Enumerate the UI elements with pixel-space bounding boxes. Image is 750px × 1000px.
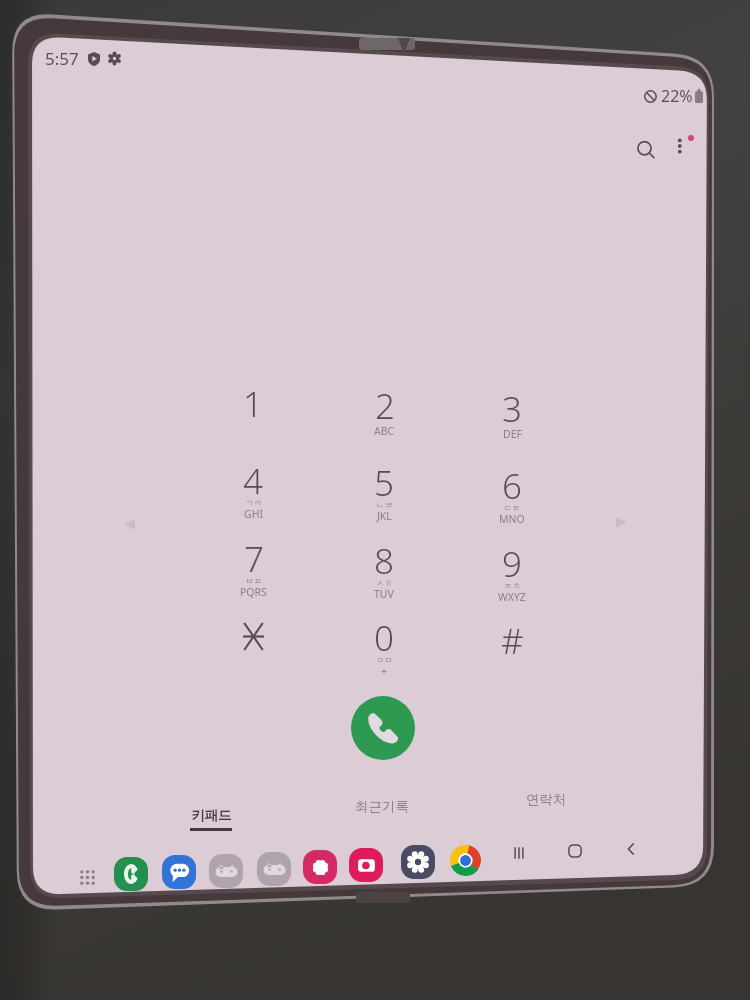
button[interactable]: Recents xyxy=(499,833,539,873)
button[interactable]: 8 xyxy=(340,537,428,610)
button[interactable]: 9 xyxy=(468,540,556,613)
button[interactable]: App xyxy=(257,852,291,886)
staticText: 4 xyxy=(243,457,263,505)
button[interactable]: 키패드 xyxy=(151,807,271,845)
button[interactable]: 3 xyxy=(468,385,556,447)
staticText: 1 xyxy=(243,380,263,428)
button[interactable]: App xyxy=(114,857,148,891)
button[interactable]: More options xyxy=(662,126,702,166)
staticText: ㅂㅍ xyxy=(245,576,262,587)
staticText: 최근기록 xyxy=(355,798,409,815)
staticText: WXYZ xyxy=(498,590,526,604)
staticText: TUV xyxy=(374,587,394,601)
staticText: ㄴㄹ xyxy=(376,500,393,511)
staticText: + xyxy=(381,664,388,678)
button[interactable]: 5 xyxy=(340,459,428,532)
button[interactable]: Star xyxy=(209,613,297,669)
button[interactable]: App xyxy=(162,855,196,889)
button[interactable]: Home xyxy=(555,831,595,871)
staticText: 9 xyxy=(502,540,522,588)
button[interactable]: Search xyxy=(626,130,666,170)
button[interactable]: 최근기록 xyxy=(322,798,442,836)
staticText: GHI xyxy=(244,507,263,521)
staticText: 키패드 xyxy=(191,807,232,824)
button[interactable]: 1 xyxy=(209,380,297,428)
button[interactable]: App xyxy=(209,854,243,888)
button[interactable]: 연락처 xyxy=(486,791,606,829)
button[interactable]: App xyxy=(303,850,337,884)
button[interactable]: Back xyxy=(611,829,651,869)
staticText: ㅅㅎ xyxy=(376,578,393,589)
staticText: ABC xyxy=(374,424,395,438)
staticText: ㄷㅌ xyxy=(504,503,521,514)
staticText: 3 xyxy=(502,385,522,433)
button[interactable]: # xyxy=(468,617,556,665)
staticText: 0 xyxy=(374,614,394,662)
staticText: 22% xyxy=(661,85,693,107)
staticText: ㅈㅊ xyxy=(504,581,521,592)
staticText: JKL xyxy=(377,509,392,523)
staticText: 5:57 xyxy=(45,47,79,70)
button[interactable]: 2 xyxy=(340,382,428,444)
staticText: 8 xyxy=(374,537,394,585)
staticText: 6 xyxy=(502,462,522,510)
button[interactable]: 4 xyxy=(209,457,297,530)
button[interactable]: 7 xyxy=(209,535,297,608)
staticText: ㄱㅋ xyxy=(245,498,262,509)
button[interactable]: 6 xyxy=(468,462,556,535)
button[interactable]: All apps xyxy=(69,859,105,895)
staticText: DEF xyxy=(503,427,522,441)
staticText: 2 xyxy=(375,382,395,430)
button[interactable]: App xyxy=(349,848,383,882)
button[interactable]: App xyxy=(401,845,435,879)
staticText: # xyxy=(501,617,524,665)
staticText: 연락처 xyxy=(526,791,567,808)
button[interactable]: 0 xyxy=(340,614,428,687)
staticText: ㅇㅁ xyxy=(376,655,393,666)
staticText: PQRS xyxy=(240,585,267,599)
button[interactable]: Chrome xyxy=(448,843,482,877)
button[interactable]: Call xyxy=(351,696,415,760)
staticText: 5 xyxy=(374,459,394,507)
staticText: MNO xyxy=(499,512,525,526)
staticText: 7 xyxy=(244,535,264,583)
